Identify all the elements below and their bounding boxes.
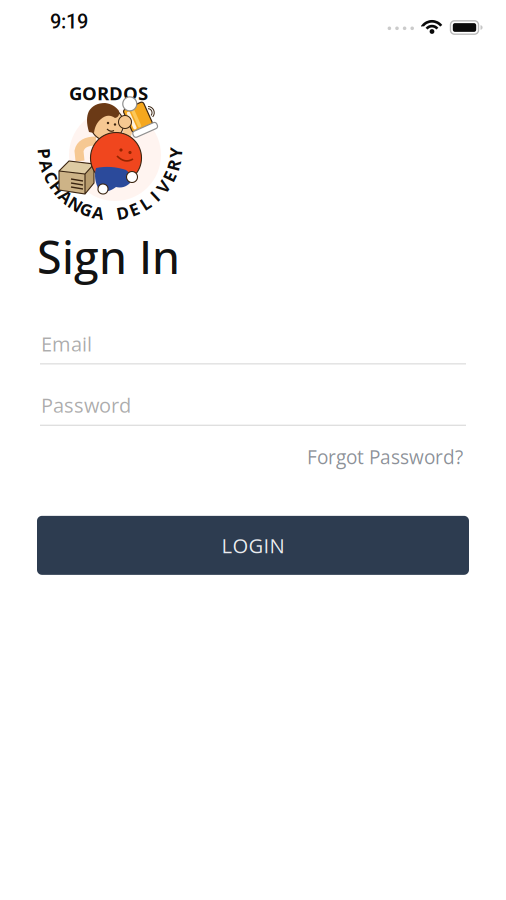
staticText: A [92,201,104,224]
staticText: E [164,164,174,188]
staticText: Forgot Password? [307,444,463,470]
staticText: G [80,197,93,221]
button[interactable]: LOGIN [37,516,469,575]
staticText: GORDOS [69,80,148,106]
staticText: 9:19 [50,10,88,33]
staticText: I [152,184,158,208]
staticText: Password [41,391,131,419]
staticText: LOGIN [221,531,284,559]
staticText: L [140,191,150,215]
staticText: V [157,175,168,198]
staticText: Sign In [37,226,180,287]
staticText: C [46,165,57,189]
textField[interactable]: Email [40,330,466,364]
staticText: P [39,142,50,166]
secureTextField[interactable]: Password [40,391,466,426]
staticText: A [60,185,72,208]
staticText: D [116,200,129,224]
staticText: A [41,154,53,178]
staticText: E [129,197,139,221]
staticText: R [167,153,179,176]
staticText: Y [170,141,181,164]
button[interactable]: Forgot Password? [307,444,463,470]
staticText: Email [41,330,92,357]
staticText: N [69,192,83,216]
staticText: H [51,176,64,199]
